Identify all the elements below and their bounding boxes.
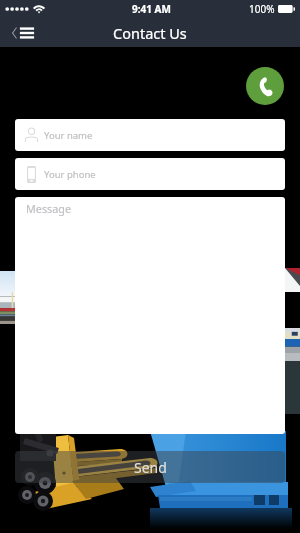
- button[interactable]: Menu: [0, 18, 46, 47]
- staticText: Send: [134, 458, 167, 477]
- staticText: Message: [26, 201, 72, 216]
- staticText: Your phone: [44, 168, 96, 181]
- button[interactable]: Call us: [246, 67, 284, 105]
- staticText: 100%: [249, 2, 275, 16]
- button[interactable]: Message: [15, 197, 285, 434]
- staticText: Contact Us: [113, 23, 187, 43]
- button[interactable]: Send: [15, 451, 285, 483]
- button[interactable]: Your phone: [15, 158, 285, 190]
- button[interactable]: Your name: [15, 119, 285, 151]
- staticText: Your name: [44, 129, 93, 142]
- staticText: 9:41 AM: [132, 2, 171, 16]
